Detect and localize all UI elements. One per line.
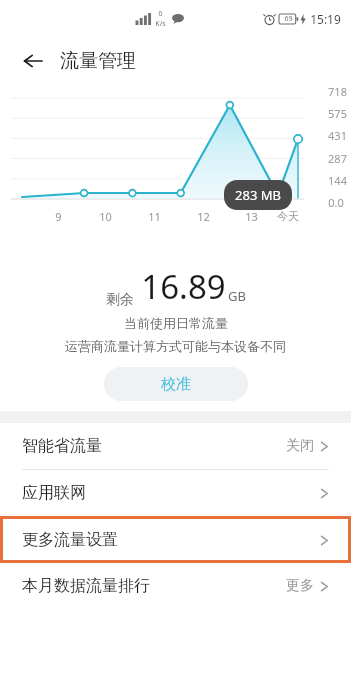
staticText: 关闭 xyxy=(286,437,314,455)
staticText: 校准 xyxy=(161,375,191,394)
staticText: 0.0 xyxy=(328,195,344,209)
button[interactable]: 更多流量设置 xyxy=(0,516,351,563)
staticText: 718 xyxy=(328,84,347,98)
staticText: 12 xyxy=(197,209,210,224)
staticText: K/s xyxy=(155,19,166,29)
button[interactable]: Back xyxy=(16,44,50,78)
staticText: 15:19 xyxy=(310,11,341,27)
staticText: 69 xyxy=(284,14,293,24)
button[interactable]: 应用联网 xyxy=(0,470,351,516)
staticText: GB xyxy=(228,287,246,305)
staticText: 10 xyxy=(99,209,112,224)
staticText: 应用联网 xyxy=(22,483,86,503)
staticText: 流量管理 xyxy=(60,49,136,73)
staticText: 0 xyxy=(158,9,163,19)
staticText: 144 xyxy=(328,173,347,187)
button[interactable]: 本月数据流量排行 xyxy=(0,563,351,609)
staticText: 16.89 xyxy=(141,264,226,309)
staticText: 本月数据流量排行 xyxy=(22,576,150,596)
staticText: 11 xyxy=(148,209,161,224)
staticText: 今天 xyxy=(277,209,299,223)
staticText: 运营商流量计算方式可能与本设备不同 xyxy=(65,338,286,354)
staticText: 283 MB xyxy=(235,186,281,204)
button[interactable]: 智能省流量 xyxy=(0,423,351,469)
staticText: 当前使用日常流量 xyxy=(124,315,228,331)
staticText: 剩余 xyxy=(106,291,134,309)
staticText: 575 xyxy=(328,106,347,120)
staticText: 更多 xyxy=(286,577,314,595)
staticText: 智能省流量 xyxy=(22,436,102,456)
staticText: 更多流量设置 xyxy=(22,530,118,550)
staticText: 287 xyxy=(328,151,347,165)
staticText: 9 xyxy=(55,209,62,224)
staticText: 431 xyxy=(328,128,347,142)
button[interactable]: 校准 xyxy=(104,367,248,401)
staticText: 13 xyxy=(245,209,258,224)
